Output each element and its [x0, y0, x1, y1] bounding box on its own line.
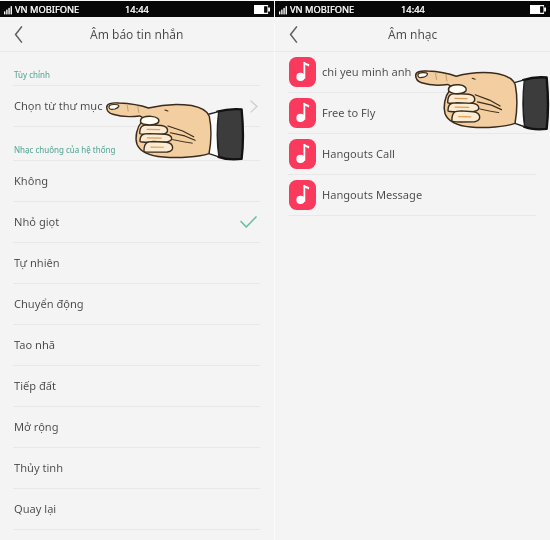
- staticText: Nhỏ giọt: [14, 214, 60, 229]
- staticText: Free to Fly: [322, 105, 376, 120]
- staticText: Chọn từ thư mục: [14, 98, 103, 113]
- button[interactable]: Back: [275, 17, 311, 51]
- staticText: 14:44: [125, 3, 149, 16]
- button[interactable]: Free to Fly: [275, 93, 550, 133]
- button[interactable]: Chuyển động: [0, 284, 274, 324]
- staticText: 14:44: [401, 3, 425, 16]
- button[interactable]: Tự nhiên: [0, 243, 274, 283]
- button[interactable]: Tiếp đất: [0, 366, 274, 406]
- button[interactable]: Quay lại: [0, 489, 274, 529]
- button[interactable]: Chọn từ thư mục: [0, 86, 274, 126]
- staticText: Không: [14, 173, 49, 188]
- staticText: VN MOBIFONE: [290, 3, 355, 16]
- staticText: VN MOBIFONE: [15, 3, 80, 16]
- button[interactable]: Mở rộng: [0, 407, 274, 447]
- staticText: Âm báo tin nhắn: [90, 26, 184, 42]
- staticText: Tao nhã: [14, 337, 56, 352]
- staticText: Hangouts Message: [322, 187, 423, 202]
- staticText: Mở rộng: [14, 419, 59, 434]
- button[interactable]: Tao nhã: [0, 325, 274, 365]
- staticText: Hangouts Call: [322, 146, 395, 161]
- staticText: Nhạc chuông của hệ thống: [14, 144, 116, 155]
- staticText: chi yeu minh anh: [322, 64, 412, 79]
- button[interactable]: chi yeu minh anh: [275, 52, 550, 92]
- staticText: Tự nhiên: [14, 255, 60, 270]
- staticText: Âm nhạc: [388, 26, 438, 42]
- staticText: Tùy chỉnh: [14, 69, 50, 80]
- staticText: Chuyển động: [14, 296, 84, 311]
- staticText: Thủy tinh: [14, 460, 64, 475]
- button[interactable]: Back: [0, 17, 36, 51]
- button[interactable]: Hangouts Call: [275, 134, 550, 174]
- button[interactable]: Nhỏ giọt: [0, 202, 274, 242]
- button[interactable]: Hangouts Message: [275, 175, 550, 215]
- button[interactable]: Không: [0, 161, 274, 201]
- button[interactable]: Thủy tinh: [0, 448, 274, 488]
- staticText: Quay lại: [14, 501, 57, 516]
- staticText: Tiếp đất: [14, 378, 57, 393]
